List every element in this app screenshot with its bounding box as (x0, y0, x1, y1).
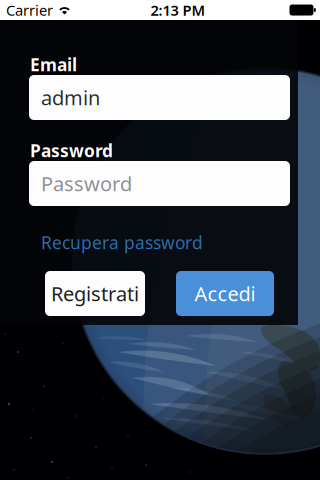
staticText: Recupera password (41, 231, 203, 254)
staticText: Accedi (194, 280, 255, 307)
staticText: Email (30, 53, 77, 76)
staticText: admin (41, 84, 100, 111)
staticText: Registrati (51, 280, 139, 307)
button[interactable]: Accedi (176, 271, 274, 316)
button[interactable]: Recupera password (41, 231, 203, 254)
staticText: 2:13 PM (150, 0, 205, 20)
staticText: Password (30, 139, 113, 162)
button[interactable]: Registrati (45, 271, 145, 316)
staticText: Password (41, 170, 132, 197)
staticText: Carrier (6, 0, 53, 20)
